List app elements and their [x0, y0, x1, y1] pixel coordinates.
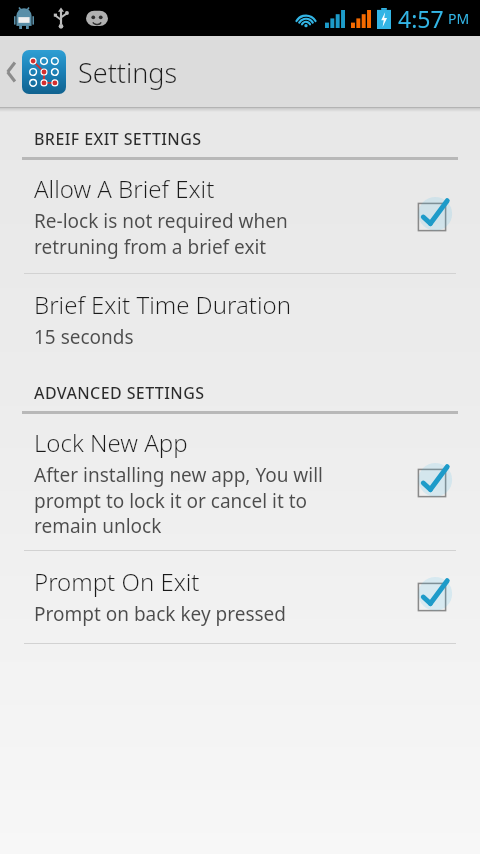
button[interactable]: Prompt On Exit checkbox [404, 568, 460, 624]
staticText: Lock New App [34, 426, 188, 459]
staticText: Brief Exit Time Duration [34, 288, 291, 321]
staticText: Settings [78, 54, 178, 91]
button[interactable]: Navigate up [0, 50, 190, 94]
staticText: PM [448, 9, 470, 28]
button[interactable]: Lock New App checkbox [404, 454, 460, 510]
staticText: Prompt On Exit [34, 565, 200, 598]
button[interactable]: Lock New App [0, 414, 480, 550]
staticText: Prompt on back key pressed [34, 601, 287, 627]
button[interactable]: Prompt On Exit [0, 551, 480, 643]
staticText: Re-lock is not required when retruning f… [34, 208, 288, 259]
button[interactable]: Brief Exit Time Duration [0, 274, 480, 366]
staticText: BREIF EXIT SETTINGS [34, 128, 202, 150]
staticText: ADVANCED SETTINGS [34, 382, 205, 404]
staticText: After installing new app, You will promp… [34, 462, 324, 538]
staticText: Allow A Brief Exit [34, 172, 215, 205]
staticText: 15 seconds [34, 324, 134, 350]
button[interactable]: Allow A Brief Exit [0, 160, 480, 273]
staticText: 4:57 [398, 3, 444, 34]
button[interactable]: Allow A Brief Exit checkbox [404, 188, 460, 244]
